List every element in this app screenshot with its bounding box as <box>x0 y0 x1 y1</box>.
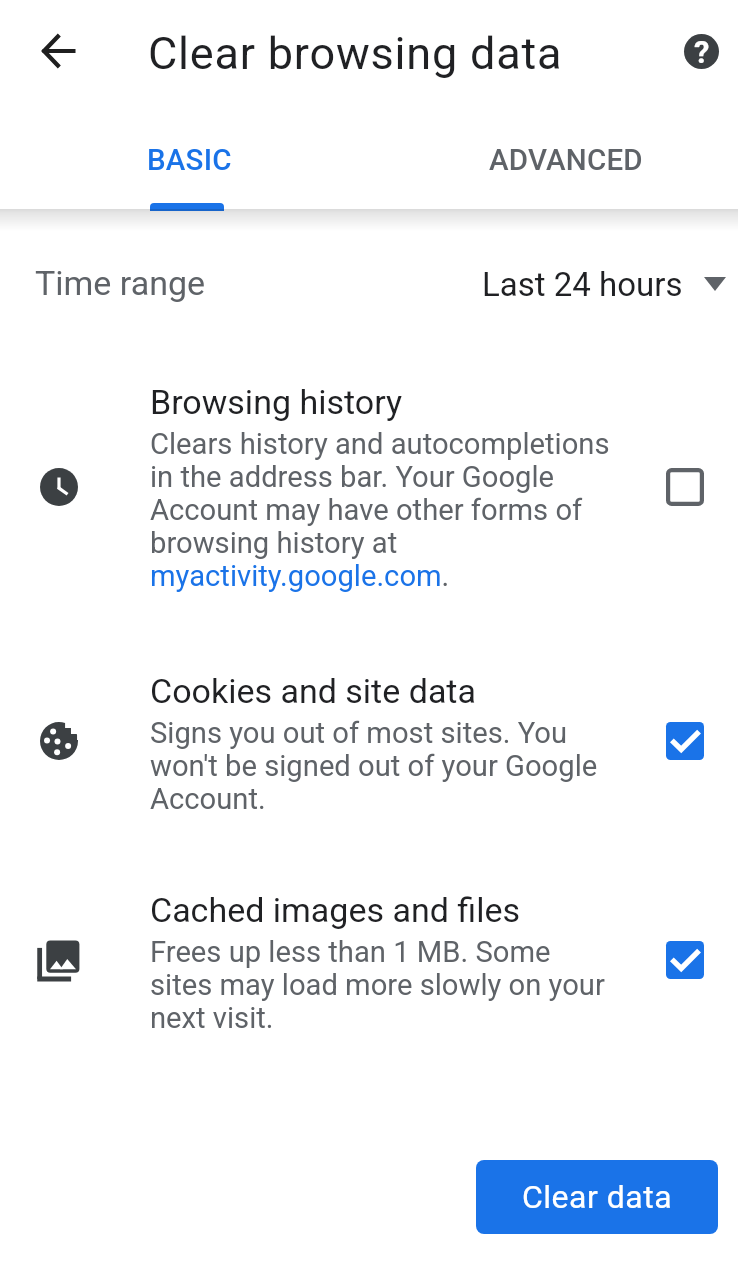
staticText: Signs you out of most sites. You won't b… <box>150 716 615 816</box>
button[interactable]: Help <box>667 17 735 85</box>
staticText: Last 24 hours <box>482 265 683 304</box>
staticText: Clears history and autocompletions in th… <box>150 427 615 593</box>
button[interactable]: BASIC <box>5 108 373 213</box>
button[interactable]: ADVANCED <box>383 108 738 213</box>
button[interactable]: Browsing history <box>657 459 713 515</box>
button[interactable]: Back <box>25 17 93 85</box>
button[interactable]: Cookies and site data <box>657 713 713 769</box>
staticText: Time range <box>35 263 206 303</box>
staticText: ? <box>694 34 710 69</box>
staticText: ADVANCED <box>489 143 643 178</box>
staticText: Cached images and files <box>150 890 521 930</box>
button[interactable] <box>0 650 738 832</box>
staticText: Browsing history <box>150 382 403 422</box>
button[interactable]: Time range <box>0 237 738 331</box>
button[interactable] <box>0 360 738 610</box>
staticText: Frees up less than 1 MB. Some sites may … <box>150 935 615 1035</box>
button[interactable]: Clear data <box>476 1160 718 1234</box>
button[interactable] <box>0 869 738 1051</box>
staticText: Cookies and site data <box>150 671 476 711</box>
staticText: Clear browsing data <box>148 27 563 80</box>
staticText: BASIC <box>147 143 232 178</box>
button[interactable]: Cached images and files <box>657 932 713 988</box>
staticText: Clear data <box>522 1178 673 1216</box>
